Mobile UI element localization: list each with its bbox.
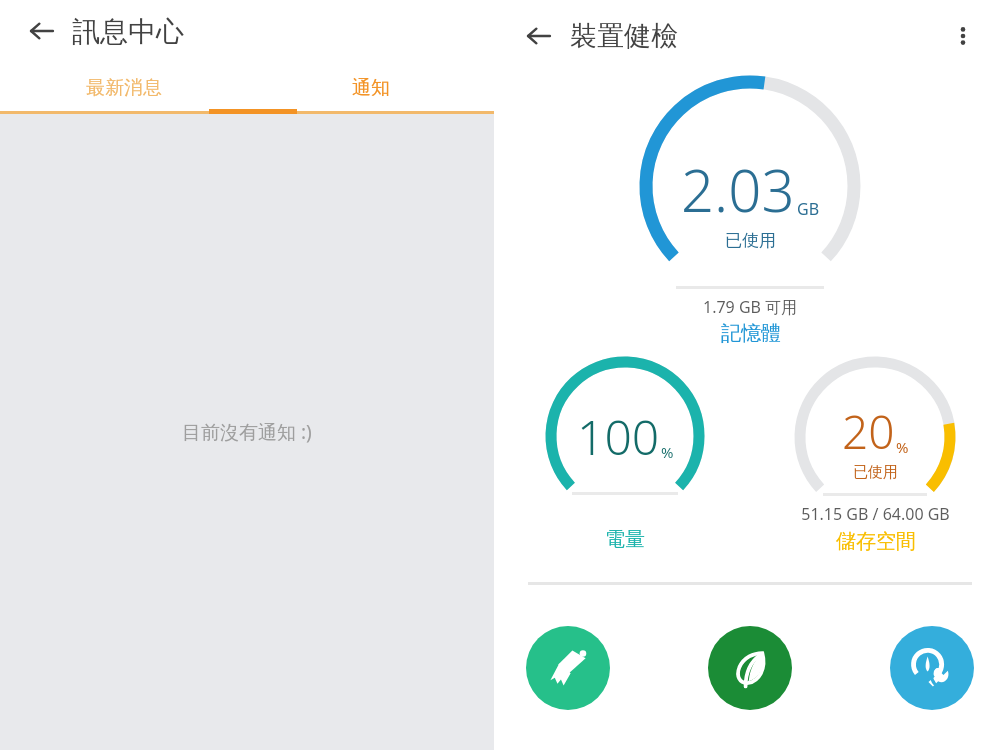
staticText: 電量	[605, 527, 645, 552]
button[interactable]: Clean	[526, 626, 610, 710]
button[interactable]: Back	[516, 13, 562, 59]
button[interactable]: 最新消息	[0, 62, 247, 114]
staticText: 已使用	[853, 463, 898, 482]
staticText: 目前沒有通知 :)	[182, 419, 312, 445]
staticText: 20	[842, 400, 895, 463]
staticText: 最新消息	[86, 76, 162, 100]
button[interactable]: 通知	[247, 62, 494, 114]
staticText: 已使用	[725, 230, 776, 251]
staticText: 100	[577, 404, 660, 469]
staticText: 通知	[352, 76, 390, 100]
staticText: 2.03	[681, 150, 795, 229]
staticText: GB	[797, 198, 820, 220]
staticText: 51.15 GB / 64.00 GB	[801, 503, 950, 525]
staticText: 裝置健檢	[570, 19, 678, 53]
button[interactable]: More options	[940, 13, 986, 59]
staticText: 1.79 GB 可用	[703, 296, 798, 318]
staticText: %	[661, 442, 674, 462]
staticText: %	[896, 437, 909, 457]
button[interactable]: Back	[20, 9, 64, 53]
staticText: 記憶體	[721, 321, 781, 346]
button[interactable]: Power saving	[708, 626, 792, 710]
staticText: 儲存空間	[836, 529, 916, 554]
staticText: 訊息中心	[72, 14, 184, 49]
button[interactable]: Optimize	[890, 626, 974, 710]
